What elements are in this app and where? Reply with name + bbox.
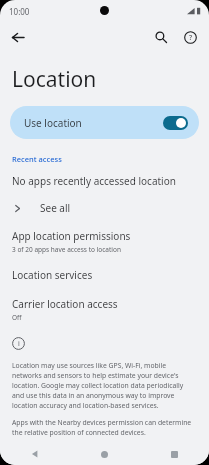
button[interactable]: Back: [0, 443, 69, 465]
staticText: 3 of 20 apps have access to location: [12, 245, 121, 254]
button[interactable]: Search: [148, 24, 174, 50]
button[interactable]: Carrier location access: [0, 297, 209, 322]
staticText: Apps with the Nearby devices permission …: [12, 418, 197, 437]
staticText: Location: [12, 65, 97, 94]
staticText: Recent access: [12, 154, 62, 164]
staticText: i: [18, 339, 20, 349]
button[interactable]: Location services: [0, 268, 209, 282]
button[interactable]: Home: [69, 443, 139, 465]
button[interactable]: App location permissions: [0, 229, 209, 254]
button[interactable]: Recent apps: [139, 443, 209, 465]
staticText: See all: [40, 201, 71, 215]
staticText: Off: [12, 313, 22, 322]
button[interactable]: Use location: [10, 106, 199, 139]
staticText: Location services: [12, 268, 93, 282]
button[interactable]: Back: [4, 24, 30, 50]
button[interactable]: See all: [0, 199, 209, 217]
staticText: 10:00: [9, 6, 30, 17]
staticText: ?: [189, 33, 193, 43]
staticText: Carrier location access: [12, 297, 118, 311]
staticText: App location permissions: [12, 229, 131, 243]
staticText: No apps recently accessed location: [12, 174, 176, 188]
staticText: Location may use sources like GPS, Wi-Fi…: [12, 361, 197, 410]
staticText: Use location: [24, 116, 82, 130]
button[interactable]: Help: [177, 24, 203, 50]
